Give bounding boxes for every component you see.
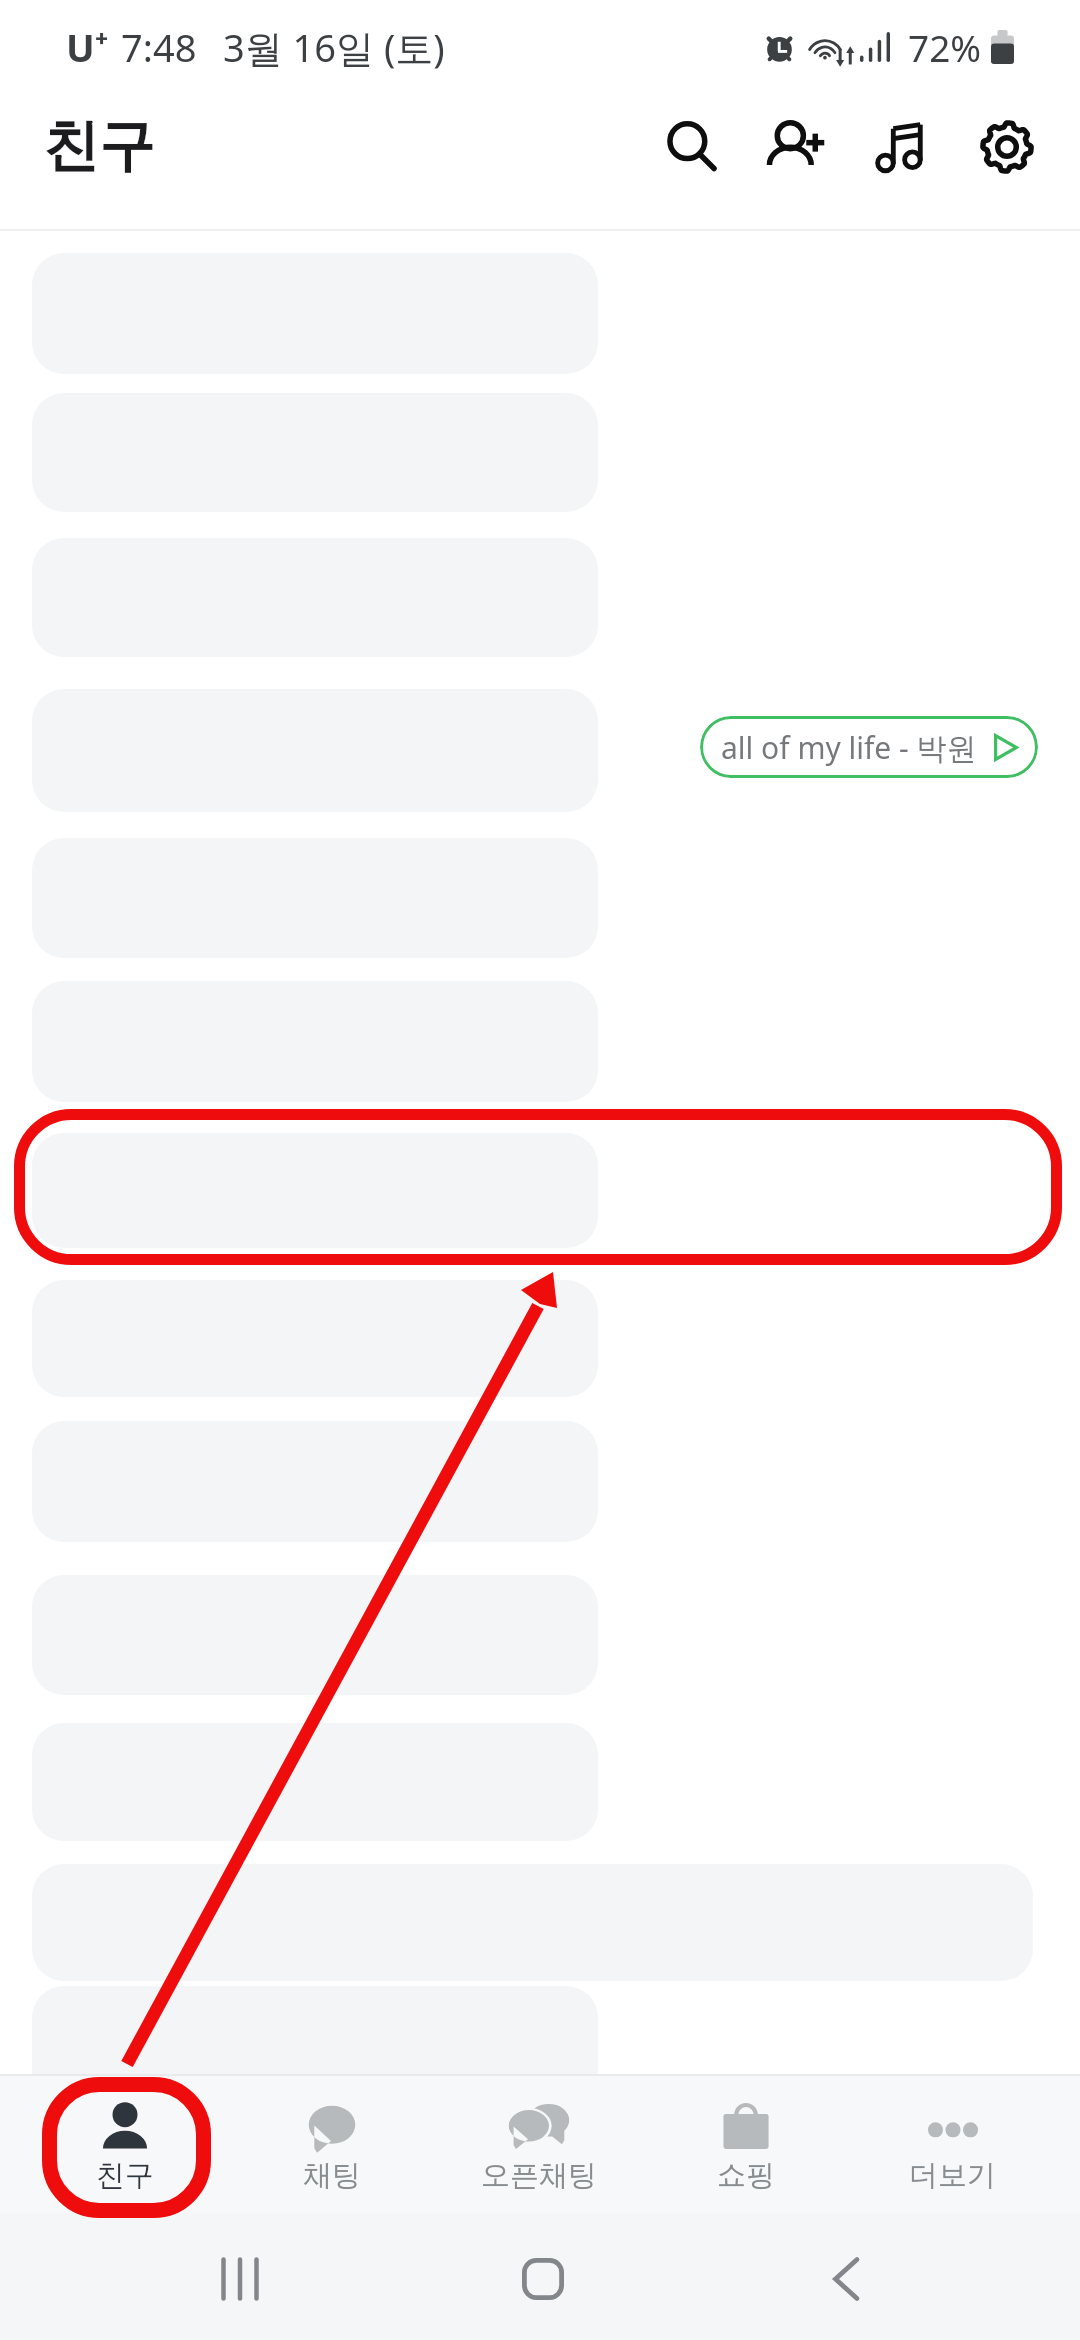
- button[interactable]: Add friend: [744, 94, 849, 199]
- staticText: 쇼핑: [717, 2157, 775, 2194]
- staticText: 72%: [908, 22, 982, 72]
- staticText: all of my life - 박원: [721, 727, 977, 768]
- button[interactable]: Back: [796, 2229, 896, 2329]
- staticText: 친구: [43, 111, 155, 182]
- button[interactable]: [32, 1986, 598, 2104]
- button[interactable]: all of my life - 박원: [700, 716, 1038, 778]
- staticText: 3월 16일 (토): [223, 21, 445, 73]
- button[interactable]: Recent apps: [192, 2229, 292, 2329]
- button[interactable]: 친구: [21, 2074, 228, 2213]
- button[interactable]: Search: [639, 94, 744, 199]
- button[interactable]: [32, 1280, 598, 1397]
- staticText: 오픈채팅: [481, 2157, 597, 2194]
- button[interactable]: 쇼핑: [642, 2074, 849, 2213]
- button[interactable]: [32, 1575, 598, 1695]
- staticText: U⁺: [66, 21, 109, 73]
- button[interactable]: 오픈채팅: [435, 2074, 642, 2213]
- button[interactable]: [32, 1133, 598, 1248]
- staticText: 채팅: [303, 2157, 361, 2194]
- staticText: 더보기: [909, 2157, 996, 2194]
- button[interactable]: Music: [849, 94, 954, 199]
- button[interactable]: 더보기: [849, 2074, 1056, 2213]
- button[interactable]: Settings: [954, 94, 1059, 199]
- button[interactable]: 채팅: [228, 2074, 435, 2213]
- button[interactable]: [32, 1864, 1033, 1981]
- staticText: 친구: [96, 2157, 154, 2194]
- button[interactable]: [32, 1421, 598, 1542]
- staticText: 7:48: [121, 21, 197, 73]
- button[interactable]: Home: [493, 2229, 593, 2329]
- button[interactable]: [32, 1723, 598, 1841]
